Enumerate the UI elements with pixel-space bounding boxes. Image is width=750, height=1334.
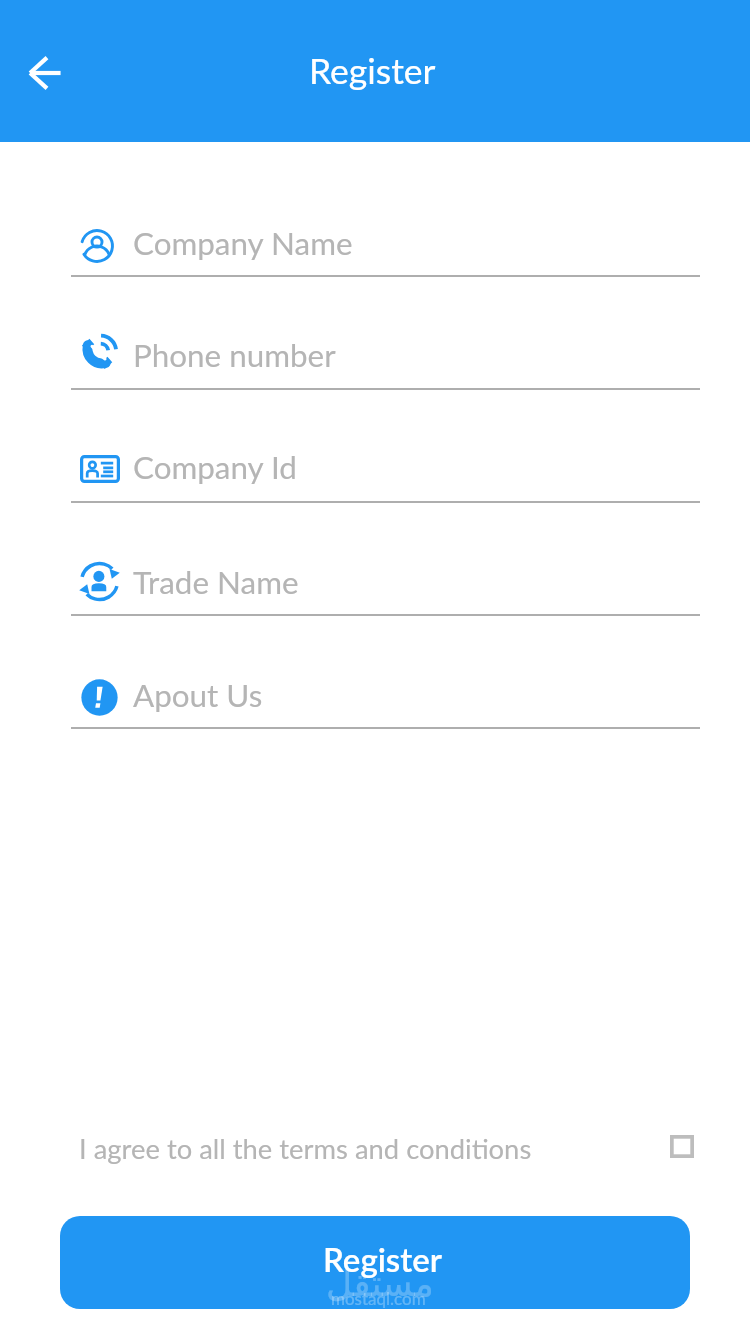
button[interactable]: Agree to terms checkbox bbox=[664, 1128, 700, 1164]
staticText: Company Id bbox=[133, 448, 297, 486]
button[interactable] bbox=[71, 545, 700, 617]
button[interactable] bbox=[71, 658, 700, 730]
staticText: Register bbox=[323, 1239, 442, 1279]
button[interactable] bbox=[71, 432, 700, 504]
button[interactable]: I agree to all the terms and conditions bbox=[79, 1132, 532, 1165]
staticText: Company Name bbox=[133, 224, 353, 262]
staticText: Apout Us bbox=[133, 676, 263, 714]
button[interactable] bbox=[71, 206, 700, 278]
staticText: Trade Name bbox=[133, 563, 299, 601]
button[interactable]: Back bbox=[12, 40, 77, 105]
staticText: Register bbox=[309, 49, 436, 92]
staticText: Phone number bbox=[133, 336, 336, 374]
button[interactable]: Register bbox=[60, 1216, 690, 1309]
button[interactable] bbox=[71, 319, 700, 391]
staticText: mostaql.com bbox=[331, 1288, 426, 1308]
staticText: مستقل bbox=[326, 1263, 434, 1305]
